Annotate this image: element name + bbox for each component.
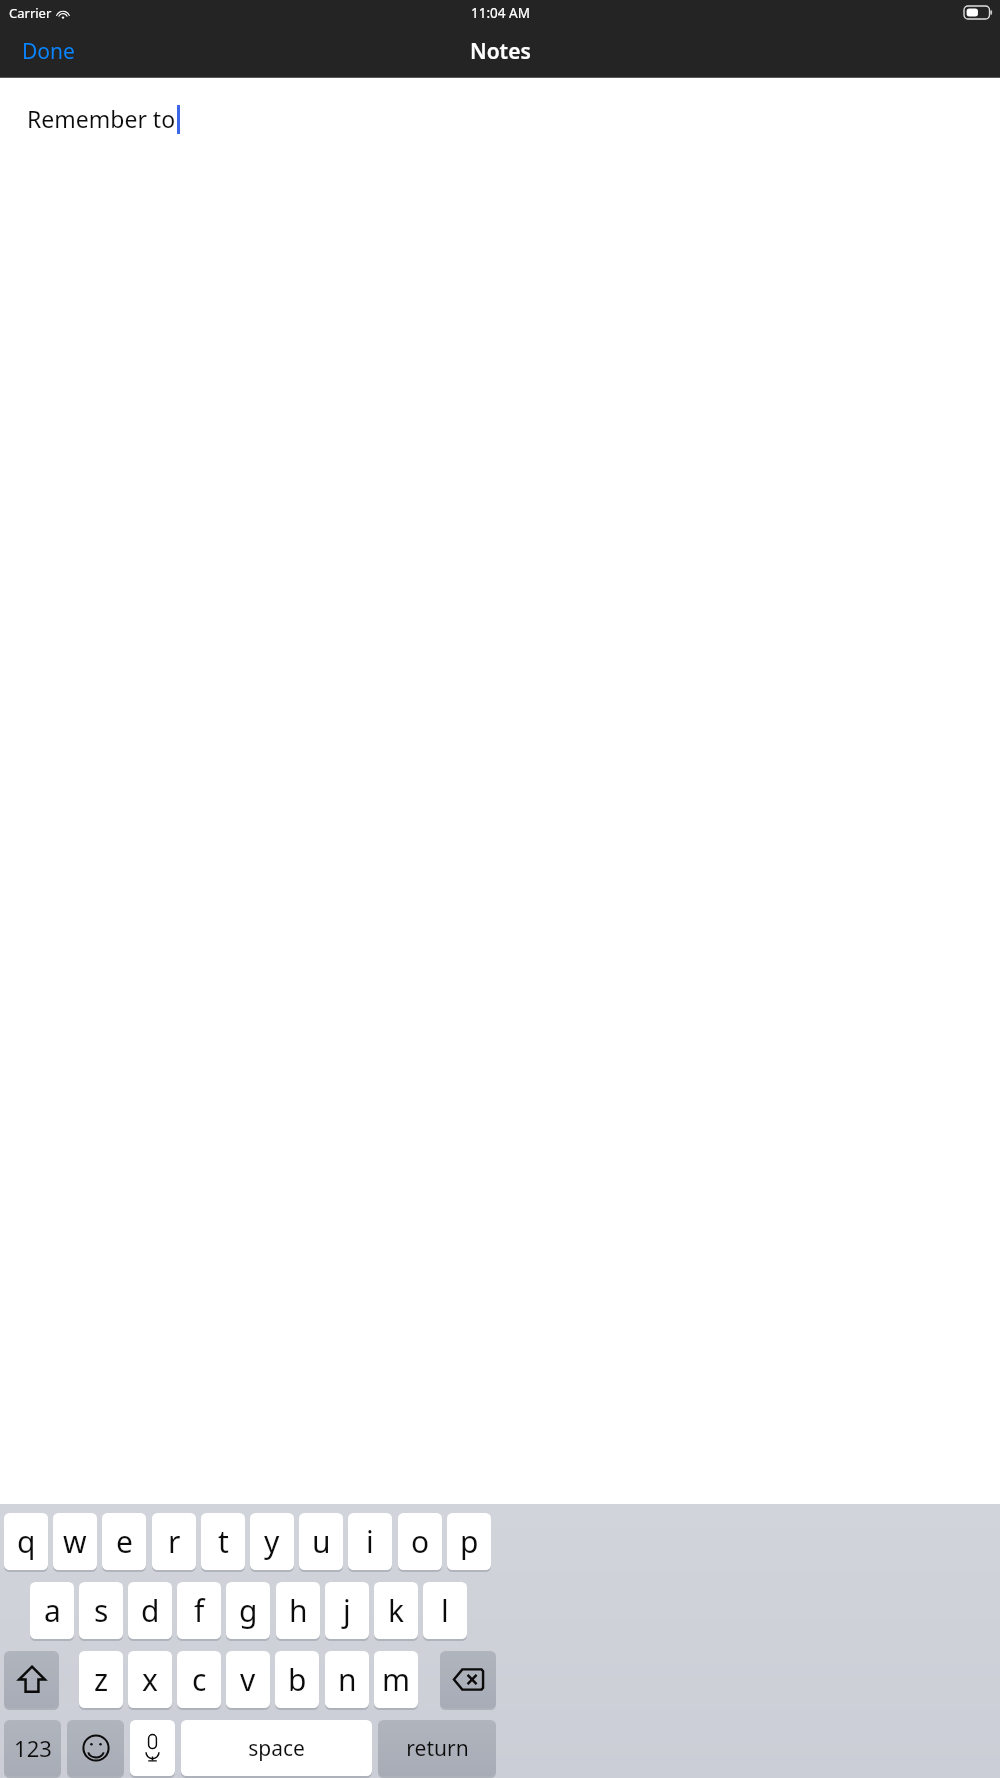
button[interactable]: space [181, 1720, 372, 1776]
staticText: space [248, 1734, 305, 1763]
button[interactable]: x [128, 1651, 172, 1708]
button[interactable]: Remember to [0, 78, 1000, 1504]
button[interactable]: Emoji [67, 1720, 124, 1776]
button[interactable]: p [447, 1513, 491, 1570]
button[interactable]: q [4, 1513, 48, 1570]
staticText: 123 [14, 1733, 52, 1763]
staticText: s [94, 1590, 109, 1631]
button[interactable]: Dictate [130, 1720, 175, 1776]
button[interactable]: h [276, 1582, 320, 1639]
staticText: r [168, 1521, 181, 1562]
button[interactable]: o [398, 1513, 442, 1570]
staticText: y [264, 1521, 280, 1562]
staticText: o [411, 1521, 430, 1562]
button[interactable]: n [325, 1651, 369, 1708]
button[interactable]: z [79, 1651, 123, 1708]
button[interactable]: v [226, 1651, 270, 1708]
button[interactable]: l [423, 1582, 467, 1639]
staticText: Carrier [9, 4, 52, 22]
button[interactable]: r [152, 1513, 196, 1570]
staticText: w [63, 1521, 87, 1562]
staticText: h [289, 1590, 308, 1631]
button[interactable]: c [177, 1651, 221, 1708]
button[interactable]: u [299, 1513, 343, 1570]
button[interactable]: g [226, 1582, 270, 1639]
staticText: k [388, 1590, 405, 1631]
button[interactable]: b [275, 1651, 319, 1708]
staticText: Done [22, 37, 75, 66]
button[interactable]: Shift [4, 1651, 59, 1708]
button[interactable]: a [30, 1582, 74, 1639]
staticText: u [312, 1521, 331, 1562]
staticText: t [218, 1521, 229, 1562]
button[interactable]: Backspace [440, 1651, 496, 1708]
staticText: c [192, 1659, 207, 1700]
staticText: g [239, 1590, 258, 1631]
button[interactable]: Numbers [4, 1720, 61, 1776]
button[interactable]: j [325, 1582, 369, 1639]
staticText: f [194, 1590, 205, 1631]
button[interactable]: e [102, 1513, 146, 1570]
button[interactable]: y [250, 1513, 294, 1570]
staticText: x [142, 1659, 158, 1700]
staticText: e [116, 1521, 133, 1562]
staticText: a [44, 1590, 61, 1631]
button[interactable]: k [374, 1582, 418, 1639]
staticText: Remember to [27, 103, 176, 134]
staticText: d [141, 1590, 160, 1631]
staticText: q [17, 1521, 36, 1562]
staticText: p [460, 1521, 479, 1562]
staticText: return [406, 1734, 469, 1763]
staticText: l [441, 1590, 449, 1631]
staticText: Notes [470, 37, 531, 66]
staticText: b [288, 1659, 307, 1700]
button[interactable]: m [374, 1651, 418, 1708]
staticText: j [343, 1590, 351, 1631]
button[interactable]: i [348, 1513, 392, 1570]
button[interactable]: f [177, 1582, 221, 1639]
button[interactable]: Done [0, 29, 97, 74]
button[interactable]: t [201, 1513, 245, 1570]
staticText: n [338, 1659, 357, 1700]
staticText: 11:04 AM [471, 4, 530, 22]
button[interactable]: return [378, 1720, 496, 1776]
staticText: i [366, 1521, 374, 1562]
staticText: z [94, 1659, 109, 1700]
button[interactable]: s [79, 1582, 123, 1639]
button[interactable]: d [128, 1582, 172, 1639]
staticText: m [382, 1659, 411, 1700]
staticText: v [240, 1659, 256, 1700]
button[interactable]: w [53, 1513, 97, 1570]
